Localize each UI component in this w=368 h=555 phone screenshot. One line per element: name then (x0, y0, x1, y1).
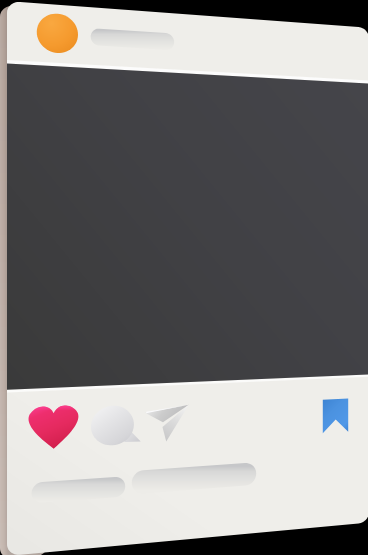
button[interactable]: Social media post card (0, 0, 368, 555)
